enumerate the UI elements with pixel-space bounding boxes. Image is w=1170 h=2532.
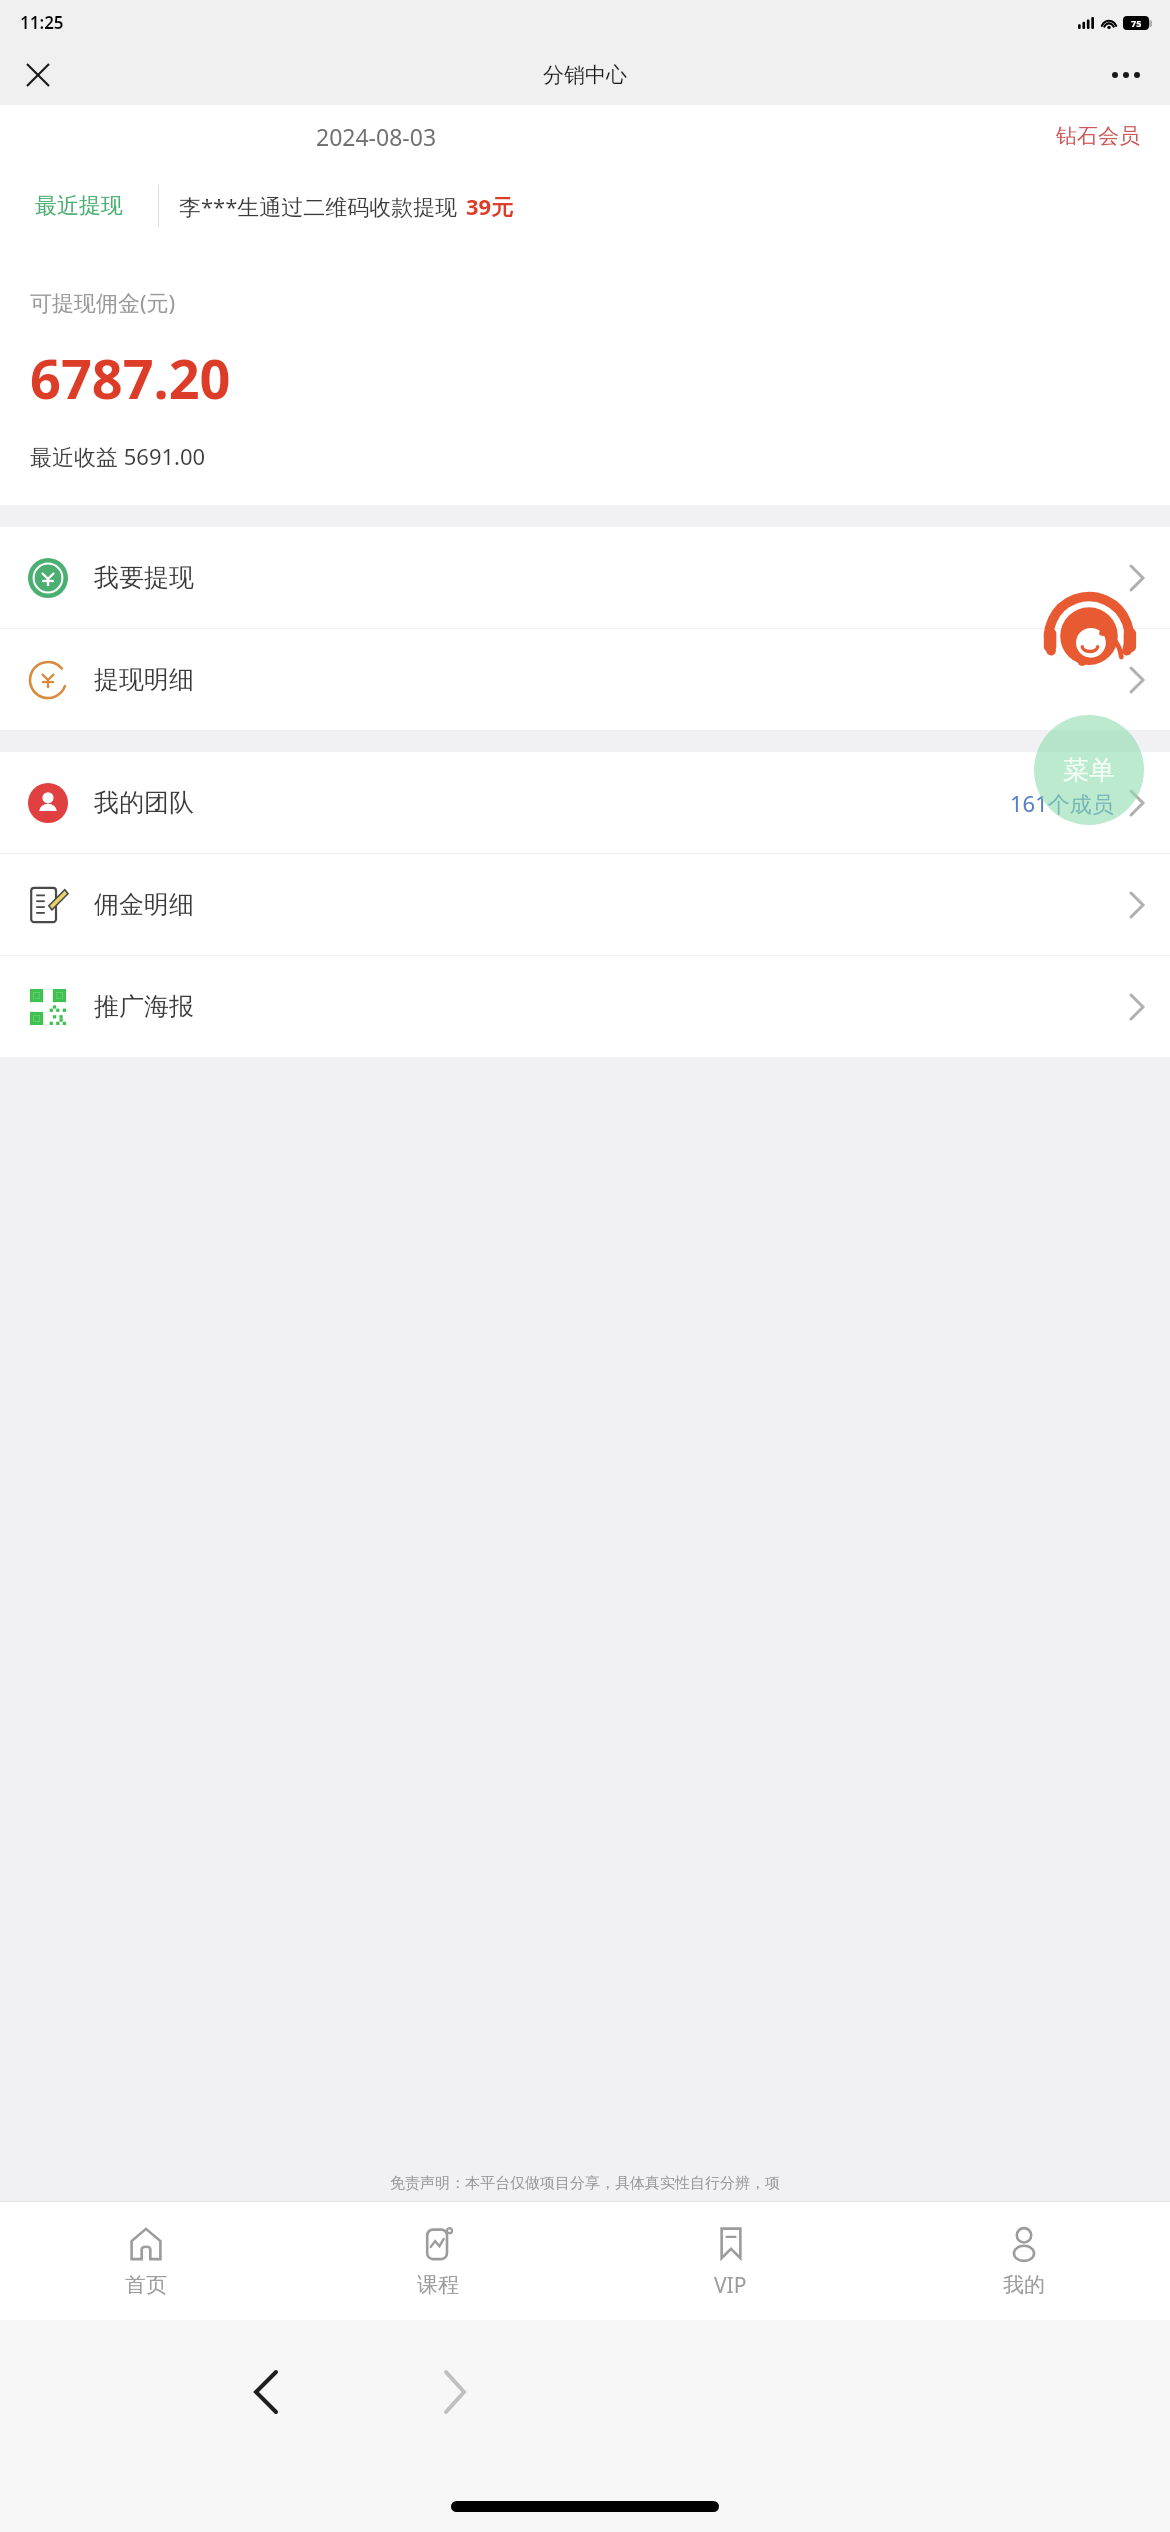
- button[interactable]: 我要提现: [0, 527, 1170, 628]
- staticText: 课程: [417, 2272, 459, 2298]
- button[interactable]: 菜单: [1034, 715, 1144, 825]
- staticText: 39元: [466, 191, 514, 221]
- button[interactable]: Back: [210, 2352, 320, 2432]
- button[interactable]: 佣金明细: [0, 854, 1170, 955]
- staticText: 我的: [1003, 2272, 1045, 2298]
- staticText: 推广海报: [94, 991, 194, 1022]
- staticText: 首页: [125, 2272, 167, 2298]
- button[interactable]: 我的: [877, 2202, 1170, 2320]
- staticText: 佣金明细: [94, 889, 194, 920]
- button[interactable]: Customer service: [1035, 585, 1143, 693]
- staticText: VIP: [714, 2271, 747, 2300]
- staticText: 钻石会员: [1056, 123, 1140, 149]
- staticText: 李***生通过二维码收款提现: [179, 191, 458, 221]
- staticText: 可提现佣金(元): [30, 287, 176, 317]
- staticText: 分销中心: [543, 62, 627, 88]
- staticText: 11:25: [20, 11, 64, 34]
- button[interactable]: 首页: [0, 2202, 292, 2320]
- button[interactable]: 最近提现: [0, 167, 1170, 245]
- button[interactable]: Close: [16, 53, 60, 97]
- button[interactable]: 我的团队: [0, 752, 1170, 853]
- staticText: 提现明细: [94, 664, 194, 695]
- staticText: 75: [1131, 17, 1142, 29]
- staticText: 6787.20: [30, 341, 231, 415]
- staticText: 免责声明：本平台仅做项目分享，具体真实性自行分辨，项: [390, 2174, 780, 2193]
- button[interactable]: More options: [1104, 60, 1148, 90]
- button[interactable]: 提现明细: [0, 629, 1170, 730]
- staticText: 最近提现: [35, 192, 123, 220]
- button[interactable]: 课程: [292, 2202, 584, 2320]
- staticText: 菜单: [1063, 754, 1115, 787]
- button[interactable]: Forward: [400, 2352, 510, 2432]
- staticText: 最近收益 5691.00: [30, 441, 206, 471]
- staticText: 2024-08-03: [316, 121, 437, 152]
- staticText: 我要提现: [94, 562, 194, 593]
- button[interactable]: VIP: [584, 2202, 877, 2320]
- staticText: 我的团队: [94, 787, 194, 818]
- button[interactable]: 推广海报: [0, 956, 1170, 1057]
- staticText: 161个成员: [1010, 788, 1114, 818]
